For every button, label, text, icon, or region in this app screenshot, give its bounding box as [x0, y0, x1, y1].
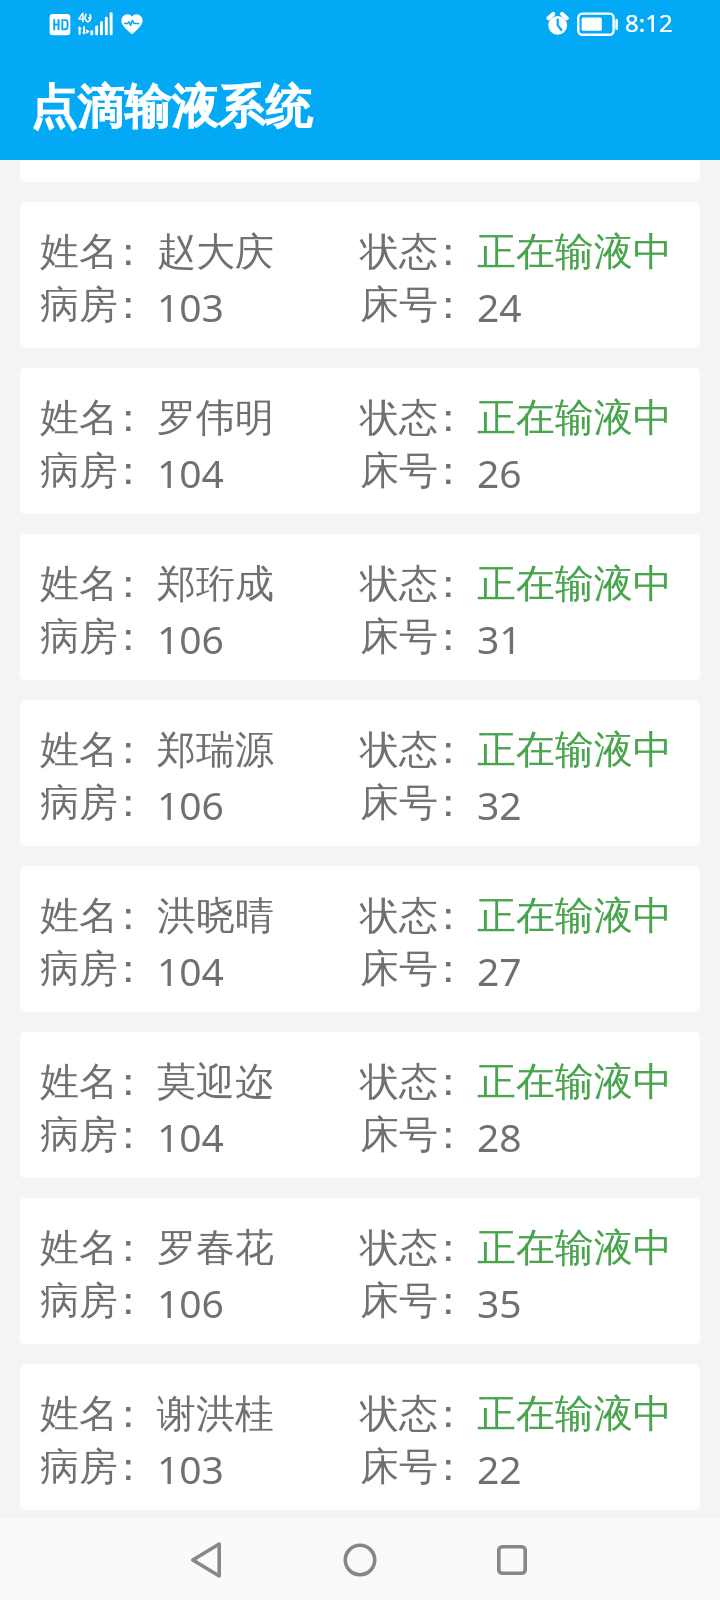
button[interactable]: 姓名 [20, 1364, 700, 1510]
staticText: 姓名 [40, 725, 118, 774]
staticText: ： [109, 778, 148, 827]
staticText: ： [429, 1057, 468, 1106]
staticText: 莫迎迩 [157, 1057, 274, 1106]
staticText: ： [109, 559, 148, 608]
button[interactable]: 姓名 [20, 202, 700, 348]
staticText: ： [109, 1276, 148, 1325]
staticText: 病房 [40, 1276, 118, 1325]
staticText: ： [109, 1442, 148, 1491]
staticText: ： [429, 227, 468, 276]
staticText: ： [109, 725, 148, 774]
staticText: 106 [157, 612, 224, 665]
staticText: 35 [477, 1276, 522, 1329]
staticText: 28 [477, 1110, 522, 1163]
staticText: ： [429, 393, 468, 442]
staticText: 点滴输液系统 [30, 78, 312, 137]
staticText: 106 [157, 1276, 224, 1329]
staticText: 病房 [40, 778, 118, 827]
staticText: 病房 [40, 280, 118, 329]
staticText: 32 [477, 778, 522, 831]
staticText: ： [429, 280, 468, 329]
staticText: ： [109, 1223, 148, 1272]
staticText: 姓名 [40, 1223, 118, 1272]
staticText: 床号 [360, 446, 438, 495]
button[interactable]: Back [146, 1519, 266, 1600]
staticText: ： [109, 1110, 148, 1159]
staticText: ： [429, 944, 468, 993]
staticText: 31 [477, 612, 522, 665]
staticText: ： [429, 1276, 468, 1325]
staticText: ： [109, 227, 148, 276]
staticText: 103 [157, 280, 224, 333]
staticText: 床号 [360, 612, 438, 661]
button[interactable]: Recent apps [452, 1519, 572, 1600]
button[interactable]: 姓名 [20, 368, 700, 514]
staticText: 罗春花 [157, 1223, 274, 1272]
staticText: 正在输液中 [477, 891, 672, 940]
staticText: 病房 [40, 1110, 118, 1159]
staticText: ： [109, 944, 148, 993]
staticText: 106 [157, 778, 224, 831]
staticText: 正在输液中 [477, 1389, 672, 1438]
button[interactable]: 姓名 [20, 700, 700, 846]
button[interactable]: 姓名 [20, 1032, 700, 1178]
staticText: ： [109, 1057, 148, 1106]
staticText: ： [429, 559, 468, 608]
button[interactable]: 姓名 [20, 866, 700, 1012]
staticText: 状态 [360, 393, 438, 442]
staticText: ： [429, 725, 468, 774]
staticText: 103 [157, 1442, 224, 1495]
staticText: ： [429, 1110, 468, 1159]
staticText: 郑珩成 [157, 559, 274, 608]
staticText: ： [109, 891, 148, 940]
staticText: 病房 [40, 612, 118, 661]
staticText: 病房 [40, 944, 118, 993]
staticText: 正在输液中 [477, 1223, 672, 1272]
staticText: 正在输液中 [477, 725, 672, 774]
staticText: 床号 [360, 280, 438, 329]
button[interactable]: 姓名 [20, 1198, 700, 1344]
staticText: 状态 [360, 891, 438, 940]
staticText: 状态 [360, 1057, 438, 1106]
staticText: ： [109, 1389, 148, 1438]
staticText: 状态 [360, 227, 438, 276]
staticText: 104 [157, 446, 224, 499]
staticText: ： [429, 891, 468, 940]
staticText: ： [429, 1389, 468, 1438]
staticText: 状态 [360, 1223, 438, 1272]
staticText: 27 [477, 944, 522, 997]
staticText: ： [109, 280, 148, 329]
staticText: ： [429, 446, 468, 495]
staticText: 姓名 [40, 393, 118, 442]
staticText: 状态 [360, 725, 438, 774]
staticText: 状态 [360, 1389, 438, 1438]
staticText: 赵大庆 [157, 227, 274, 276]
staticText: 正在输液中 [477, 1057, 672, 1106]
staticText: ： [429, 1442, 468, 1491]
staticText: 床号 [360, 1110, 438, 1159]
staticText: 24 [477, 280, 522, 333]
staticText: 22 [477, 1442, 522, 1495]
staticText: 104 [157, 944, 224, 997]
staticText: ： [429, 778, 468, 827]
staticText: 姓名 [40, 891, 118, 940]
staticText: 26 [477, 446, 522, 499]
staticText: 床号 [360, 1442, 438, 1491]
staticText: ： [429, 1223, 468, 1272]
button[interactable]: Home [300, 1519, 420, 1600]
button[interactable]: 姓名 [20, 534, 700, 680]
staticText: 8:12 [625, 6, 673, 39]
staticText: 郑瑞源 [157, 725, 274, 774]
staticText: ： [109, 612, 148, 661]
staticText: 正在输液中 [477, 227, 672, 276]
staticText: 状态 [360, 559, 438, 608]
staticText: 姓名 [40, 1057, 118, 1106]
staticText: 病房 [40, 446, 118, 495]
staticText: 104 [157, 1110, 224, 1163]
staticText: 罗伟明 [157, 393, 274, 442]
staticText: 床号 [360, 778, 438, 827]
staticText: 正在输液中 [477, 559, 672, 608]
staticText: ： [109, 446, 148, 495]
staticText: 床号 [360, 1276, 438, 1325]
